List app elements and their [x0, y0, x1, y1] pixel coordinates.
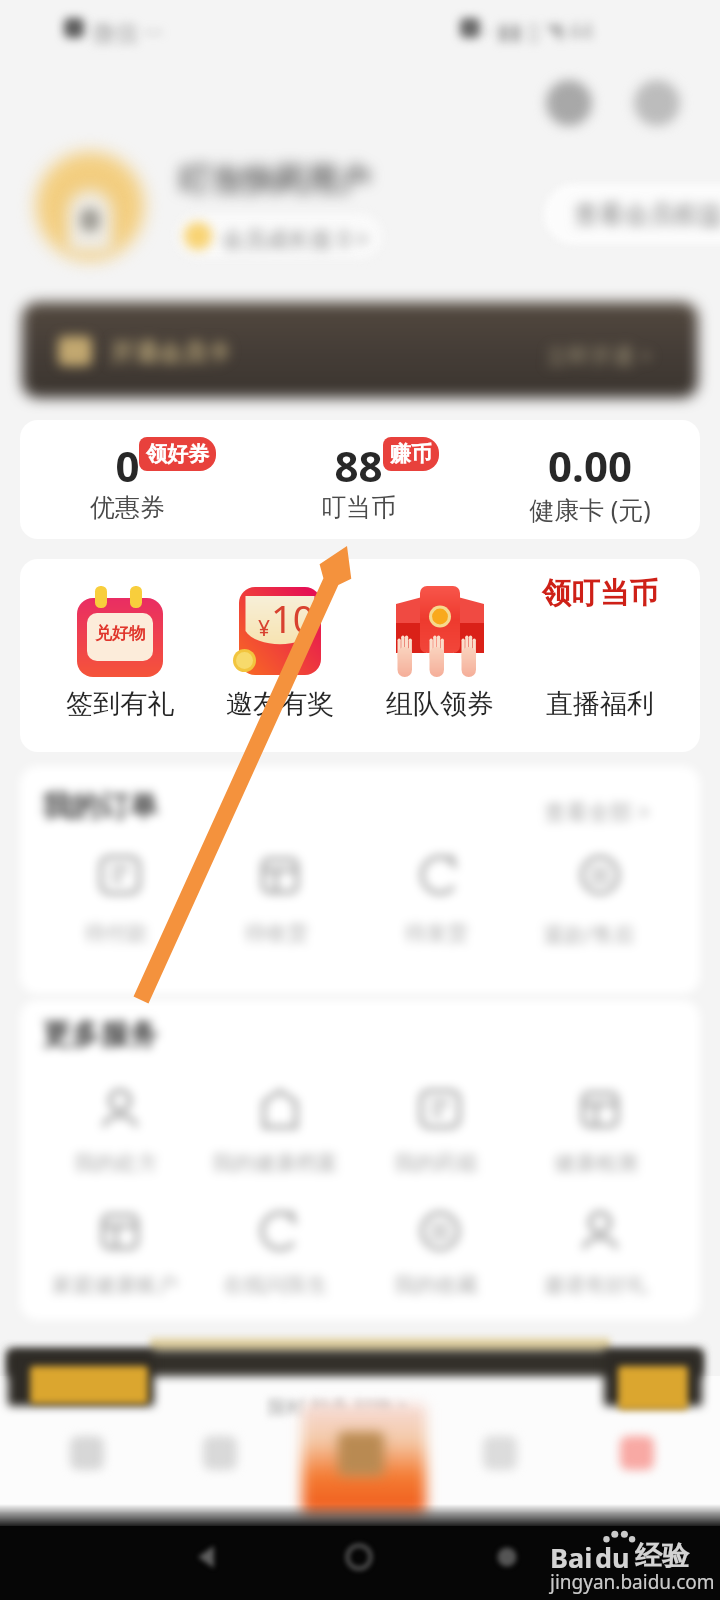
button[interactable]: ¥	[200, 559, 360, 752]
button[interactable]: Category	[203, 1436, 237, 1470]
staticText: · ▮▮ ▯ ◥ 44	[486, 15, 594, 45]
staticText: 领叮当币	[542, 575, 658, 612]
button[interactable]: Me	[620, 1436, 654, 1470]
staticText: 我的订单	[42, 788, 158, 825]
button[interactable]	[415, 1084, 465, 1134]
button[interactable]: Settings	[546, 80, 592, 126]
staticText: 我的药箱	[394, 1150, 478, 1176]
button[interactable]	[575, 1206, 625, 1256]
button[interactable]	[575, 850, 625, 900]
staticText: 健康检测	[554, 1150, 638, 1176]
staticText: 0	[115, 437, 140, 494]
staticText: 会员成长值 0 >	[222, 223, 369, 253]
button[interactable]: 更多服务	[20, 1000, 700, 1320]
button[interactable]	[176, 214, 382, 258]
staticText: 叮当币	[321, 492, 396, 523]
button[interactable]: 组队领券	[360, 559, 520, 752]
staticText: 领好券	[146, 441, 209, 467]
staticText: 查看会员权益 >	[574, 196, 720, 230]
button[interactable]: Home	[342, 1540, 376, 1574]
staticText: ¥	[258, 614, 271, 643]
staticText: 待发货	[405, 920, 468, 946]
staticText: du	[595, 1539, 630, 1576]
staticText: 10	[271, 592, 315, 644]
button[interactable]: 兑好物	[40, 559, 200, 752]
button[interactable]	[544, 184, 720, 244]
button[interactable]	[575, 1084, 625, 1134]
staticText: 开通会员卡	[110, 338, 230, 368]
staticText: jingyan.baidu.com	[550, 1569, 715, 1595]
button[interactable]: Customer service	[634, 80, 680, 126]
button[interactable]	[95, 1206, 145, 1256]
staticText: 立即开通 >	[546, 340, 653, 370]
button[interactable]	[415, 1206, 465, 1256]
button[interactable]: Home	[70, 1436, 104, 1470]
button[interactable]	[255, 1084, 305, 1134]
staticText: 限时 秒杀 好物 >	[268, 1394, 408, 1420]
button[interactable]: 我的订单	[20, 766, 700, 994]
staticText: 赚币	[390, 441, 432, 467]
staticText: 邀友有奖	[226, 687, 334, 721]
staticText: 0.00	[548, 437, 632, 494]
staticText: 退款/售后	[543, 920, 635, 949]
staticText: Bai	[550, 1539, 593, 1576]
staticText: 待付款	[85, 920, 148, 946]
staticText: 组队领券	[386, 687, 494, 721]
button[interactable]: 0	[20, 420, 700, 539]
staticText: 签到有礼	[66, 687, 174, 721]
button[interactable]	[95, 850, 145, 900]
staticText: 兑好物	[95, 623, 146, 644]
button[interactable]: 0	[20, 420, 240, 539]
button[interactable]: Avatar	[36, 152, 144, 260]
staticText: 在线问医生	[223, 1272, 328, 1298]
button[interactable]	[95, 1084, 145, 1134]
staticText: 待收货	[245, 920, 308, 946]
staticText: 优惠券	[90, 492, 165, 523]
button[interactable]: Back	[190, 1540, 224, 1574]
button[interactable]	[255, 850, 305, 900]
staticText: 微信 ···	[92, 16, 163, 47]
button[interactable]: 0.00	[477, 420, 700, 539]
staticText: 我的收藏	[394, 1272, 478, 1298]
button[interactable]: Membership banner	[22, 302, 698, 398]
staticText: 经验	[635, 1539, 689, 1573]
button[interactable]: Promo	[302, 1404, 426, 1514]
staticText: 查看全部 >	[544, 796, 651, 826]
button[interactable]: Recents	[490, 1540, 524, 1574]
staticText: 88	[334, 437, 383, 494]
button[interactable]: 领叮当币	[520, 559, 680, 752]
button[interactable]	[415, 850, 465, 900]
staticText: 叮当快药用户	[178, 160, 370, 200]
staticText: 家庭健康账户	[52, 1272, 178, 1298]
staticText: 健康卡 (元)	[529, 492, 651, 526]
button[interactable]: Cart	[483, 1436, 517, 1470]
staticText: 更多服务	[42, 1016, 158, 1053]
staticText: 直播福利	[546, 687, 654, 721]
staticText: 我的处方	[74, 1150, 158, 1176]
button[interactable]: 88	[245, 420, 471, 539]
button[interactable]	[255, 1206, 305, 1256]
staticText: 邀请有好礼	[543, 1272, 648, 1298]
staticText: 我的健康档案	[212, 1150, 338, 1176]
